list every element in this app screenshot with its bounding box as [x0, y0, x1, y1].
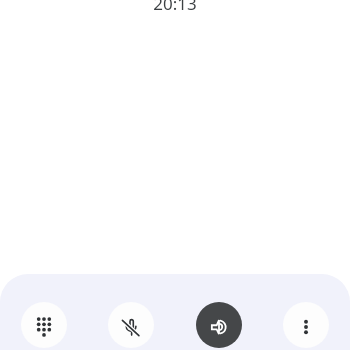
button[interactable]: Show dial pad	[21, 302, 67, 348]
button[interactable]: More options	[283, 302, 329, 348]
staticText: 20:13	[0, 0, 350, 15]
button[interactable]: Mute microphone	[108, 302, 154, 348]
button[interactable]: Turn off speaker	[196, 302, 242, 348]
